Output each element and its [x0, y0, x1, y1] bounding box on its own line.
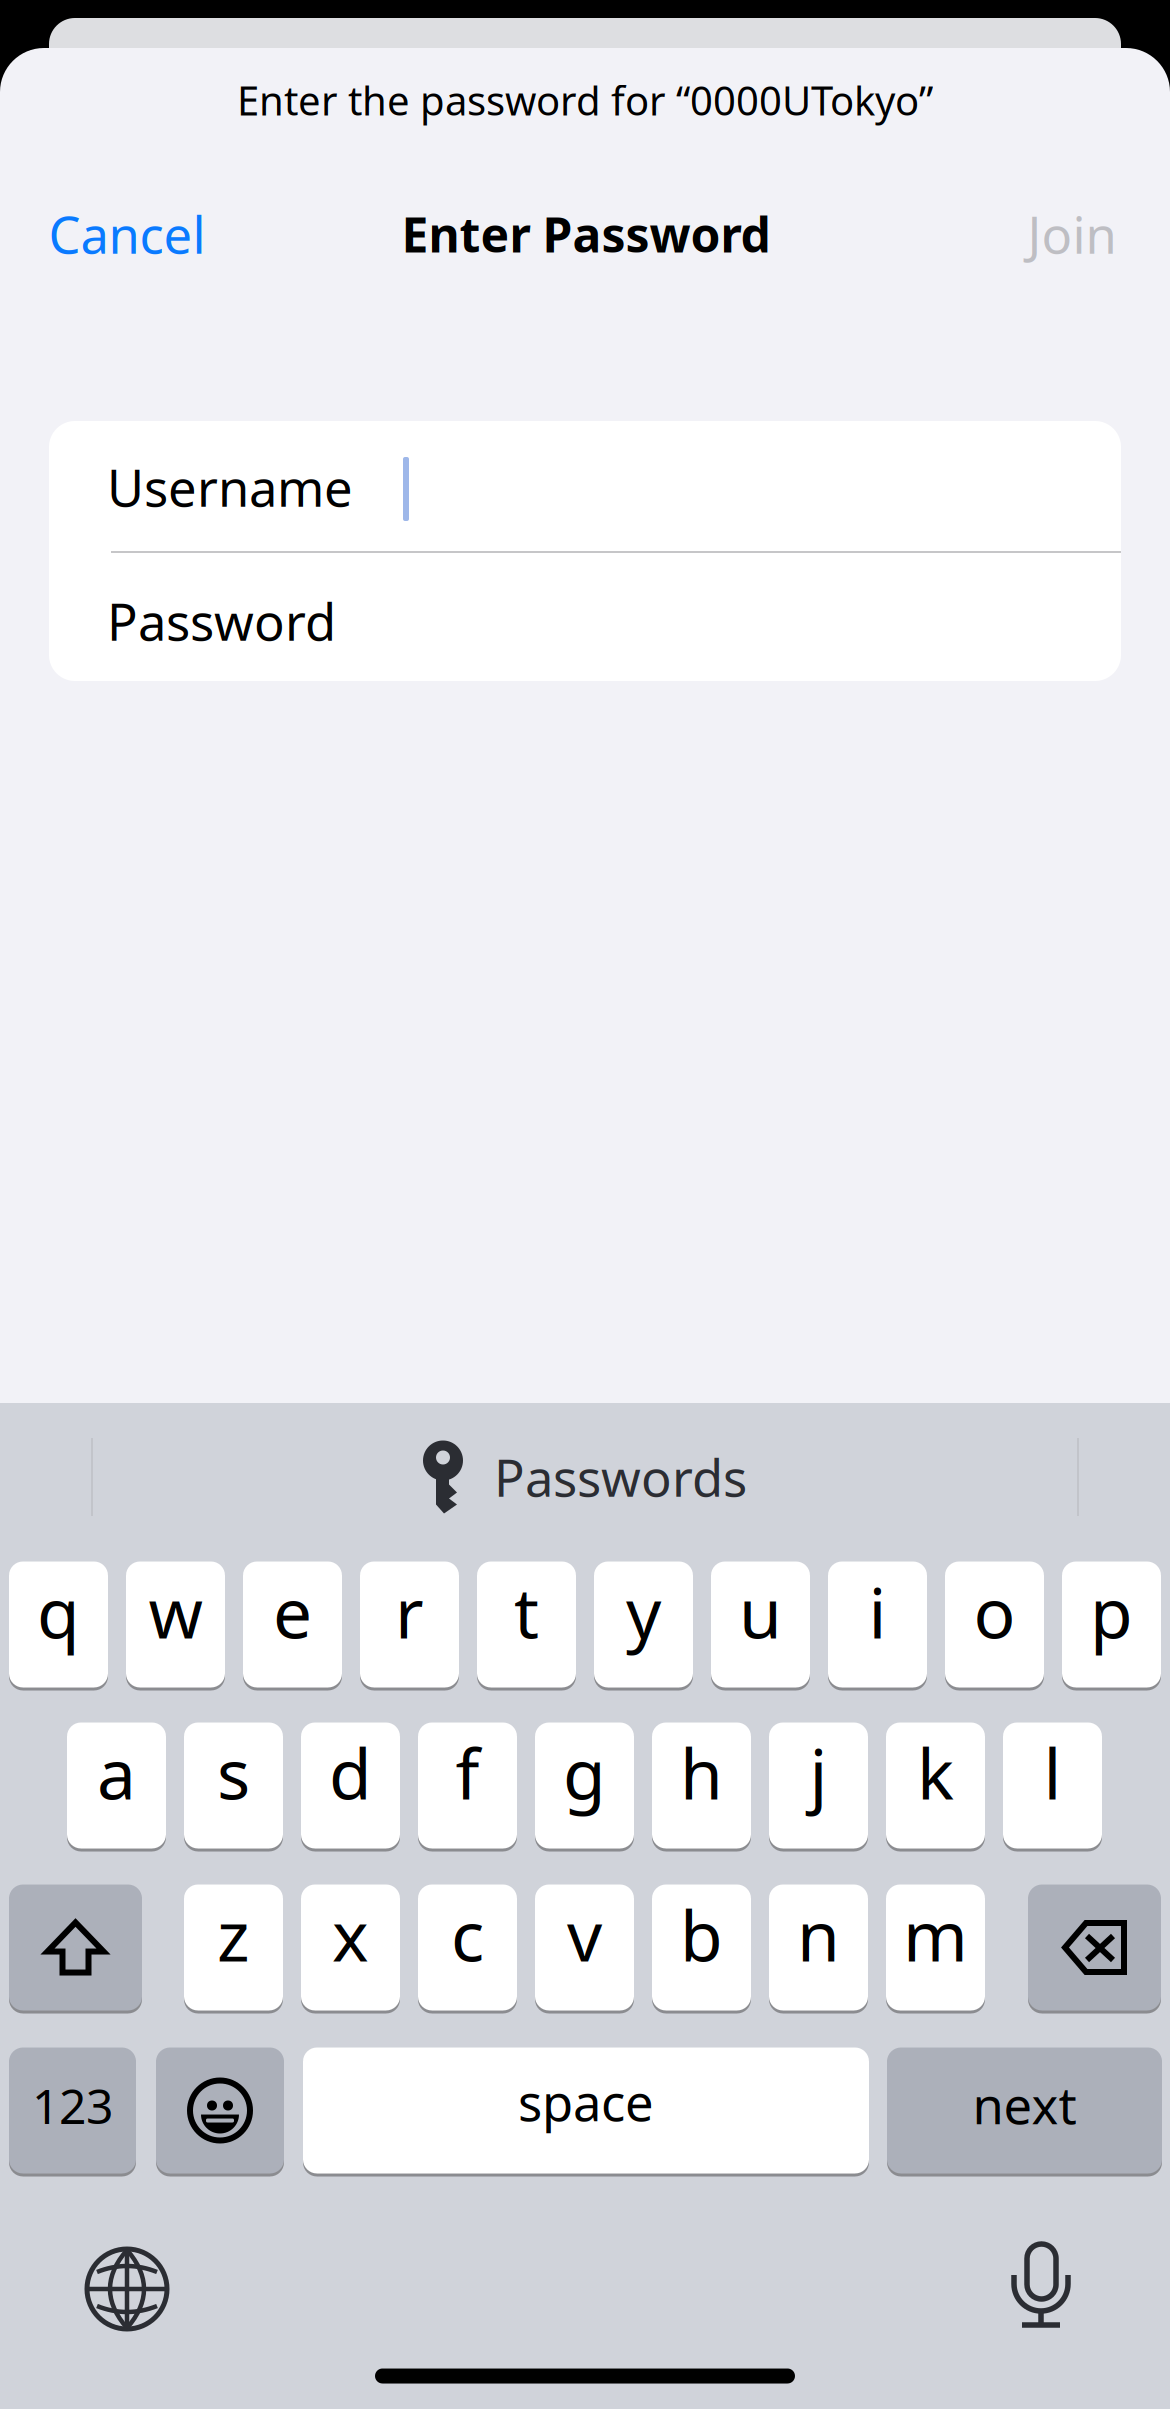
- staticText: t: [514, 1565, 539, 1658]
- staticText: k: [917, 1726, 954, 1819]
- button[interactable]: q: [9, 1560, 108, 1689]
- button[interactable]: g: [535, 1721, 634, 1850]
- staticText: Cancel: [48, 200, 205, 268]
- button[interactable]: p: [1062, 1560, 1161, 1689]
- button[interactable]: h: [652, 1721, 751, 1850]
- staticText: Username: [107, 453, 353, 521]
- staticText: f: [455, 1726, 479, 1819]
- button[interactable]: r: [360, 1560, 459, 1689]
- staticText: j: [809, 1726, 827, 1819]
- staticText: 123: [32, 2074, 113, 2137]
- button[interactable]: Next keyboard: [87, 2249, 167, 2329]
- staticText: u: [739, 1565, 782, 1658]
- button[interactable]: l: [1003, 1721, 1102, 1850]
- button[interactable]: o: [945, 1560, 1044, 1689]
- staticText: Password: [107, 587, 336, 655]
- button[interactable]: c: [418, 1883, 517, 2012]
- button[interactable]: u: [711, 1560, 810, 1689]
- button[interactable]: e: [243, 1560, 342, 1689]
- staticText: q: [37, 1565, 80, 1658]
- button[interactable]: b: [652, 1883, 751, 2012]
- button[interactable]: space: [303, 2046, 869, 2175]
- button[interactable]: k: [886, 1721, 985, 1850]
- button[interactable]: t: [477, 1560, 576, 1689]
- staticText: Enter the password for “0000UTokyo”: [237, 73, 933, 126]
- staticText: d: [329, 1726, 372, 1819]
- staticText: Join: [1027, 200, 1116, 268]
- button[interactable]: Delete: [1028, 1883, 1161, 2012]
- staticText: o: [973, 1565, 1015, 1658]
- staticText: next: [972, 2071, 1076, 2138]
- button[interactable]: w: [126, 1560, 225, 1689]
- button[interactable]: a: [67, 1721, 166, 1850]
- button[interactable]: Cancel: [36, 182, 217, 286]
- button[interactable]: m: [886, 1883, 985, 2012]
- button[interactable]: Emoji: [156, 2046, 284, 2175]
- staticText: a: [97, 1726, 136, 1819]
- button[interactable]: Password: [49, 552, 1121, 681]
- button[interactable]: next: [887, 2046, 1162, 2175]
- staticText: b: [680, 1888, 723, 1981]
- staticText: l: [1043, 1726, 1061, 1819]
- staticText: space: [518, 2068, 654, 2135]
- staticText: y: [626, 1565, 661, 1658]
- button[interactable]: x: [301, 1883, 400, 2012]
- staticText: Passwords: [494, 1443, 747, 1511]
- button[interactable]: f: [418, 1721, 517, 1850]
- staticText: e: [273, 1565, 312, 1658]
- button[interactable]: d: [301, 1721, 400, 1850]
- button[interactable]: j: [769, 1721, 868, 1850]
- button[interactable]: Shift: [9, 1883, 142, 2012]
- staticText: v: [567, 1888, 602, 1981]
- button[interactable]: i: [828, 1560, 927, 1689]
- staticText: g: [563, 1726, 606, 1819]
- button[interactable]: v: [535, 1883, 634, 2012]
- staticText: h: [680, 1726, 723, 1819]
- button[interactable]: s: [184, 1721, 283, 1850]
- staticText: p: [1090, 1565, 1133, 1658]
- button[interactable]: y: [594, 1560, 693, 1689]
- button[interactable]: 123: [9, 2046, 136, 2175]
- staticText: s: [217, 1726, 250, 1819]
- staticText: x: [332, 1888, 369, 1981]
- button[interactable]: Join: [1015, 182, 1128, 286]
- staticText: w: [148, 1565, 202, 1658]
- staticText: c: [451, 1888, 484, 1981]
- staticText: r: [395, 1565, 424, 1658]
- staticText: z: [217, 1888, 250, 1981]
- button[interactable]: Dictation: [1013, 2244, 1069, 2326]
- button[interactable]: Passwords: [409, 1430, 761, 1523]
- staticText: i: [868, 1565, 886, 1658]
- staticText: n: [797, 1888, 840, 1981]
- button[interactable]: n: [769, 1883, 868, 2012]
- staticText: Enter Password: [401, 202, 770, 266]
- staticText: m: [903, 1888, 968, 1981]
- button[interactable]: Username: [49, 421, 1121, 552]
- button[interactable]: z: [184, 1883, 283, 2012]
